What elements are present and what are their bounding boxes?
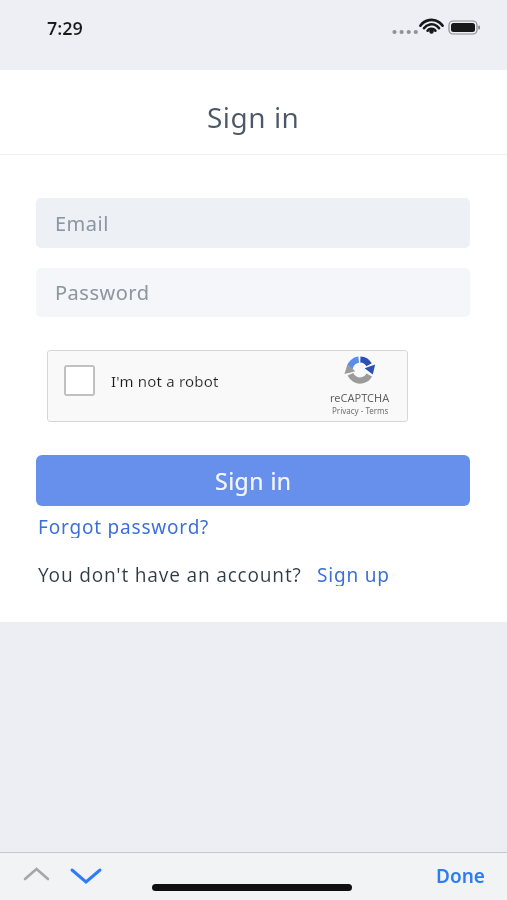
button[interactable]: Forgot password? bbox=[38, 514, 210, 538]
staticText: Email bbox=[55, 210, 109, 237]
staticText: Sign in bbox=[215, 465, 292, 496]
staticText: reCAPTCHA bbox=[330, 390, 390, 404]
button[interactable]: Sign up bbox=[317, 562, 390, 586]
staticText: I'm not a robot bbox=[111, 371, 219, 391]
staticText: Sign up bbox=[317, 562, 390, 586]
button[interactable]: Sign in bbox=[36, 455, 470, 506]
button[interactable]: Email bbox=[36, 198, 470, 248]
button[interactable]: Done bbox=[420, 862, 500, 890]
staticText: Privacy - Terms bbox=[332, 405, 389, 416]
staticText: Forgot password? bbox=[38, 514, 210, 538]
button[interactable] bbox=[64, 365, 95, 396]
staticText: 7:29 bbox=[47, 16, 83, 41]
staticText: Sign in bbox=[207, 98, 300, 136]
staticText: You don't have an account? bbox=[38, 562, 302, 586]
staticText: Done bbox=[436, 863, 485, 889]
staticText: Password bbox=[55, 279, 150, 306]
button[interactable]: Password bbox=[36, 268, 470, 317]
